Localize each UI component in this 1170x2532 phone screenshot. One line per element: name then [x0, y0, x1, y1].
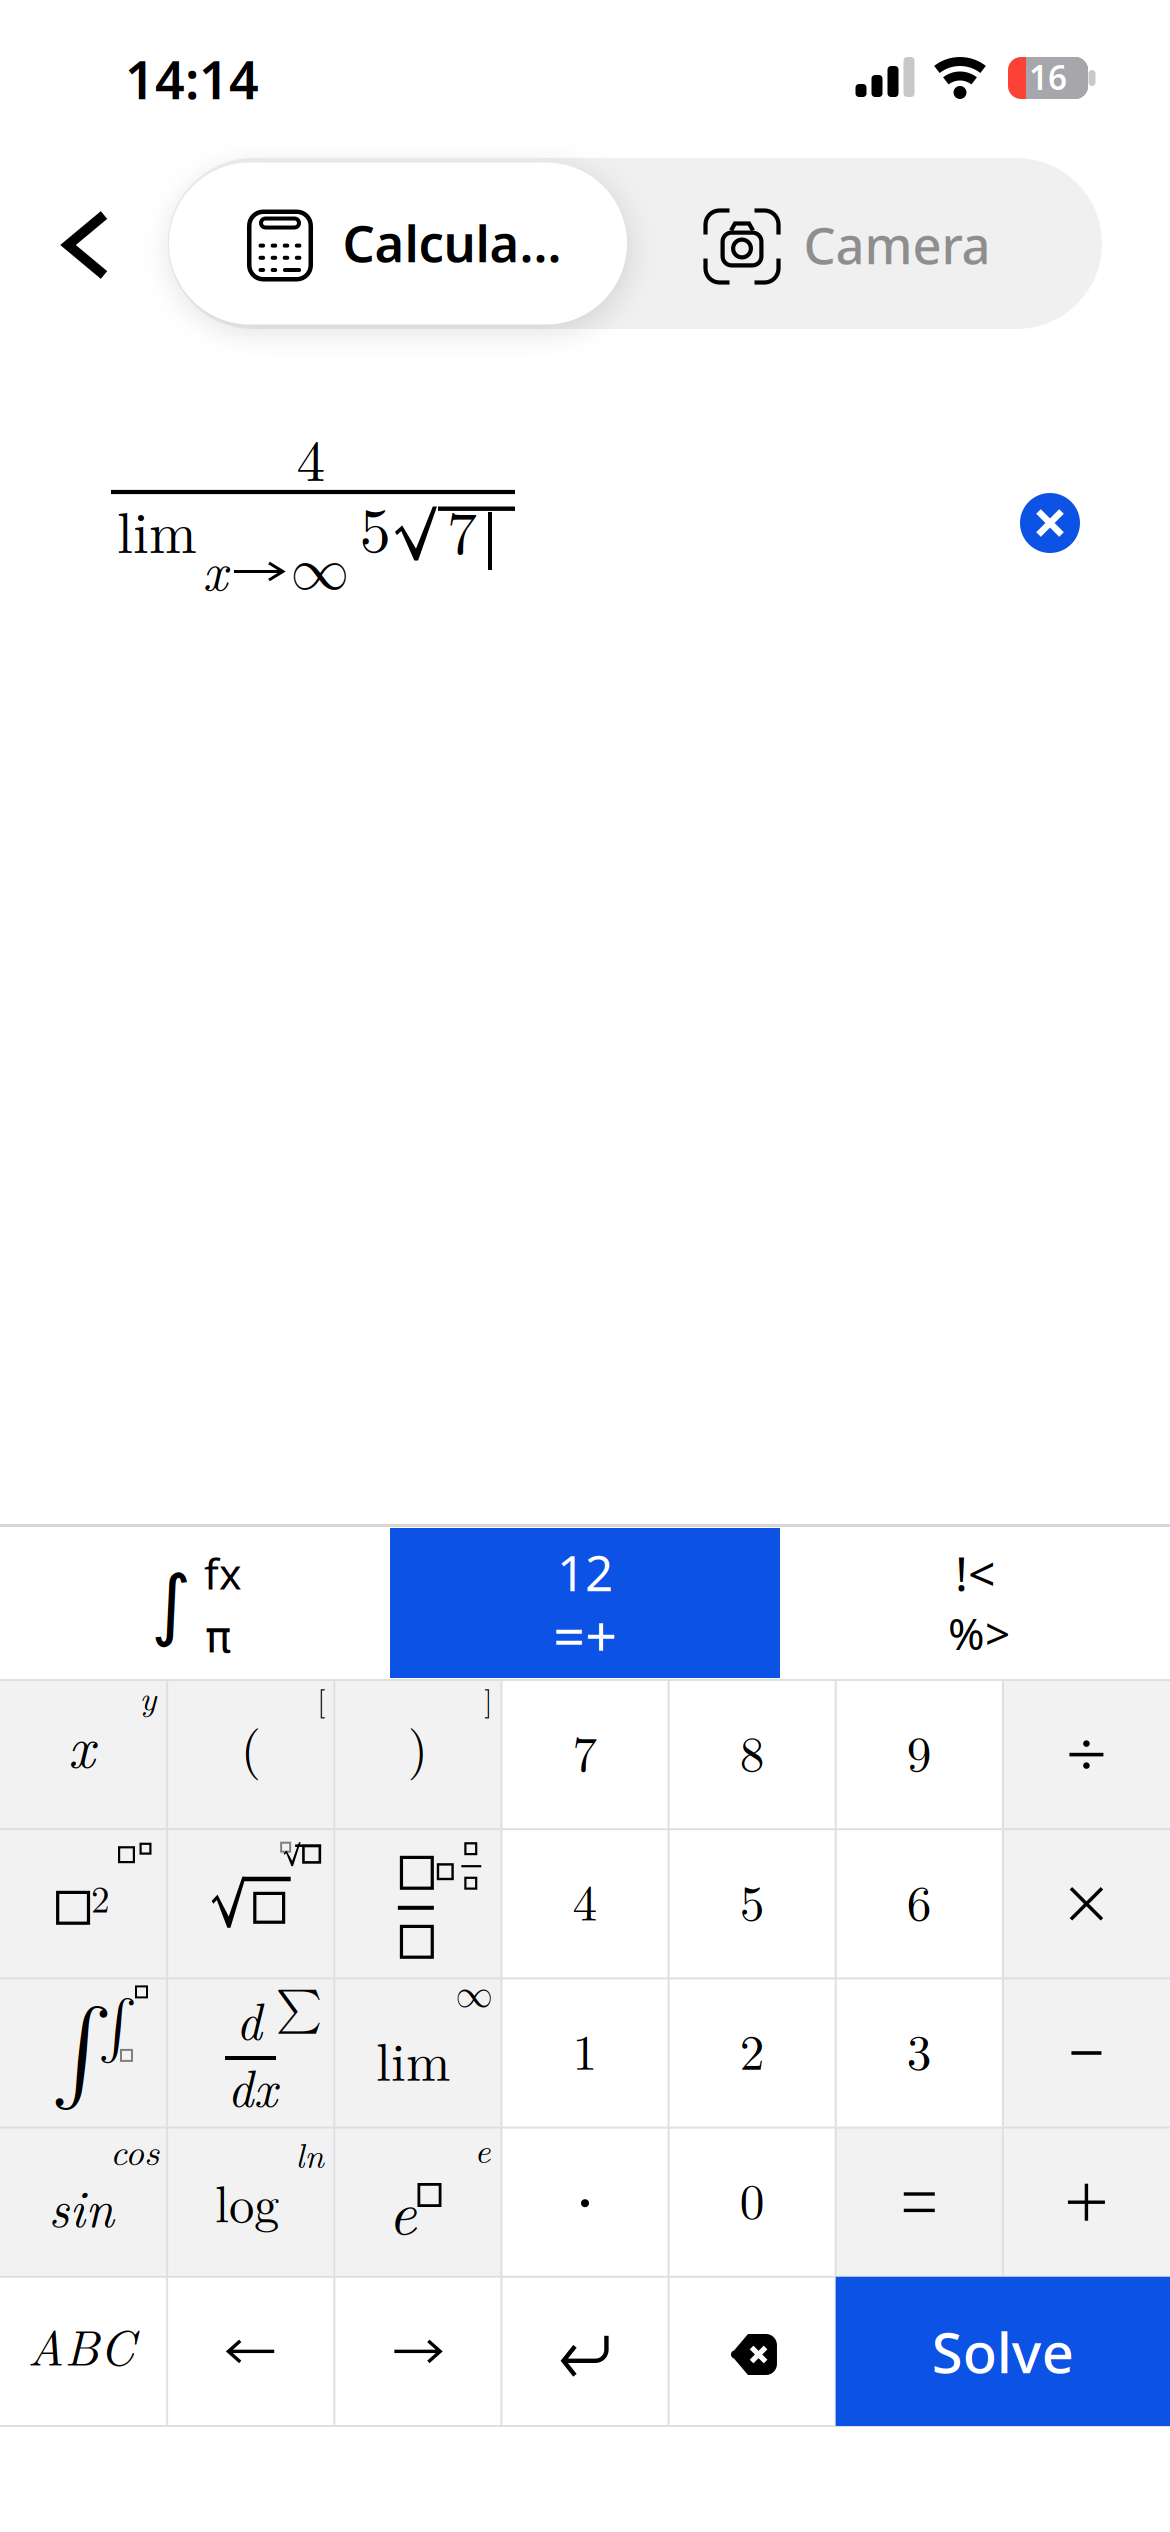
button[interactable]: ∫ [0, 1528, 390, 1678]
button[interactable]: 2 [669, 1978, 836, 2128]
button[interactable]: x [0, 1680, 167, 1829]
staticText: 12 [557, 1539, 613, 1605]
button[interactable]: sin [0, 2128, 167, 2277]
button[interactable] [1003, 1829, 1170, 1978]
button[interactable]: 8 [669, 1680, 836, 1829]
staticText: [ [317, 1678, 325, 1720]
button[interactable] [167, 1829, 334, 1978]
staticText: %> [948, 1604, 1010, 1662]
staticText: d [236, 1983, 262, 2054]
staticText: 7 [447, 486, 477, 571]
staticText: 14:14 [125, 44, 259, 114]
staticText: π [205, 1611, 231, 1663]
staticText: ABC [28, 2310, 135, 2380]
button[interactable]: Solve [836, 2277, 1170, 2426]
button[interactable]: log [167, 2128, 334, 2277]
staticText: 3 [907, 2014, 932, 2084]
staticText: ∑ [276, 1987, 322, 2031]
staticText: Calcula... [342, 209, 561, 276]
staticText: ] [484, 1678, 492, 1720]
button[interactable] [501, 2128, 668, 2277]
staticText: 8 [740, 1716, 765, 1785]
button[interactable]: 9 [836, 1680, 1003, 1829]
button[interactable] [1003, 2128, 1170, 2277]
button[interactable]: 2 [0, 1829, 167, 1978]
staticText: x [68, 1703, 95, 1784]
button[interactable] [836, 2128, 1003, 2277]
button[interactable]: Camera [627, 162, 1097, 324]
staticText: ∫ [50, 2006, 112, 2099]
staticText: 1 [572, 2014, 597, 2084]
staticText: Solve [932, 2314, 1074, 2389]
staticText: 7 [572, 1716, 597, 1785]
button[interactable]: Calcula... [169, 162, 627, 324]
button[interactable]: e [334, 2128, 501, 2277]
button[interactable]: 6 [836, 1829, 1003, 1978]
button[interactable] [1003, 1680, 1170, 1829]
staticText: 6 [907, 1865, 932, 1935]
staticText: ∫ [98, 1998, 137, 2057]
staticText: !< [955, 1541, 995, 1605]
staticText: ( [241, 1709, 261, 1782]
button[interactable]: ABC [0, 2277, 167, 2426]
staticText: e [474, 2124, 490, 2173]
staticText: ) [408, 1709, 428, 1782]
button[interactable]: 1 [501, 1978, 668, 2128]
button[interactable] [501, 2277, 668, 2426]
staticText: dx [227, 2050, 277, 2121]
button[interactable]: 4 [501, 1829, 668, 1978]
button[interactable]: ) [334, 1680, 501, 1829]
button[interactable]: 0 [669, 2128, 836, 2277]
button[interactable] [167, 2277, 334, 2426]
staticText: 5 [359, 482, 390, 570]
staticText: lim [117, 488, 197, 570]
button[interactable] [1003, 1978, 1170, 2128]
staticText: 0 [740, 2163, 765, 2233]
staticText: 5 [740, 1865, 765, 1935]
staticText: 9 [907, 1716, 932, 1785]
staticText: y [139, 1671, 156, 1721]
button[interactable]: 5 [669, 1829, 836, 1978]
button[interactable] [334, 1829, 501, 1978]
staticText: ∞ [290, 542, 349, 600]
staticText: ∫ [151, 1559, 191, 1649]
button[interactable]: ∫ [0, 1978, 167, 2128]
staticText: Camera [803, 211, 990, 278]
button[interactable]: 12 [390, 1528, 780, 1678]
button[interactable]: ( [167, 1680, 334, 1829]
staticText: cos [110, 2123, 159, 2176]
button[interactable] [1020, 493, 1080, 553]
staticText: e [388, 2165, 416, 2252]
button[interactable]: 3 [836, 1978, 1003, 2128]
button[interactable]: d [167, 1978, 334, 2128]
staticText: log [215, 2165, 279, 2237]
button[interactable]: lim [334, 1978, 501, 2128]
button[interactable] [334, 2277, 501, 2426]
button[interactable] [669, 2277, 836, 2426]
staticText: sin [48, 2170, 113, 2241]
button[interactable]: !< [780, 1528, 1170, 1678]
staticText: fx [204, 1545, 242, 1601]
staticText: 16 [1029, 55, 1067, 99]
staticText: ∞ [455, 1976, 492, 2014]
button[interactable] [65, 212, 107, 278]
staticText: 2 [740, 2014, 765, 2084]
staticText: 2 [91, 1870, 110, 1923]
staticText: x [202, 530, 227, 606]
staticText: lim [376, 2021, 450, 2096]
staticText: ln [295, 2129, 323, 2178]
staticText: =+ [553, 1598, 617, 1672]
button[interactable]: 7 [501, 1680, 668, 1829]
staticText: 4 [296, 416, 325, 498]
staticText: 4 [572, 1865, 597, 1935]
